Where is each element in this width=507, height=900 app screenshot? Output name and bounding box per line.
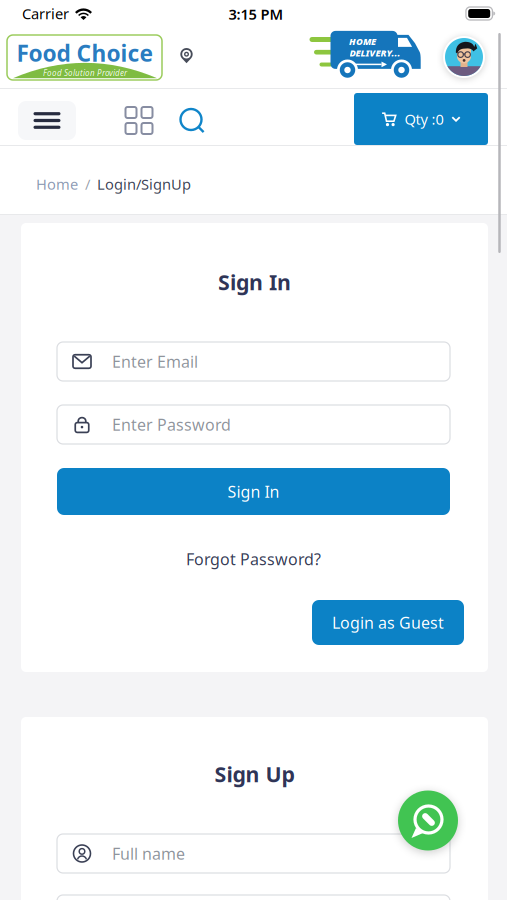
- staticText: Enter Email: [112, 351, 198, 372]
- staticText: Qty :0: [404, 109, 443, 129]
- staticText: Carrier: [22, 4, 69, 23]
- staticText: 3:15 PM: [228, 4, 283, 24]
- button[interactable]: Enter Email: [57, 895, 450, 900]
- button[interactable]: Sign In: [57, 468, 450, 515]
- button[interactable]: Full name: [57, 834, 450, 873]
- button[interactable]: Home: [36, 174, 78, 194]
- button[interactable]: Location: [180, 48, 193, 64]
- staticText: Sign In: [218, 268, 291, 296]
- button[interactable]: WhatsApp chat: [398, 790, 458, 850]
- button[interactable]: Menu: [18, 101, 76, 140]
- staticText: DELIVERY...: [349, 47, 400, 59]
- staticText: Full name: [112, 843, 185, 864]
- staticText: HOME: [349, 35, 376, 48]
- staticText: Food Choice: [16, 38, 153, 68]
- staticText: Login as Guest: [332, 612, 444, 633]
- button[interactable]: Account: [443, 36, 485, 78]
- staticText: Enter Password: [112, 414, 231, 435]
- staticText: Food Solution Provider: [43, 68, 127, 78]
- staticText: Home: [36, 174, 78, 194]
- staticText: Login/SignUp: [97, 174, 191, 194]
- button[interactable]: Login as Guest: [312, 600, 464, 645]
- button[interactable]: Forgot Password?: [186, 548, 321, 570]
- staticText: Sign Up: [214, 760, 294, 788]
- button[interactable]: Cart quantity: [354, 93, 488, 145]
- button[interactable]: Food Choice home: [7, 35, 162, 80]
- staticText: Forgot Password?: [186, 548, 321, 570]
- button[interactable]: Enter Password: [57, 405, 450, 444]
- staticText: /: [85, 174, 90, 194]
- button[interactable]: Categories: [125, 107, 152, 134]
- button[interactable]: Enter Email: [57, 342, 450, 381]
- staticText: Sign In: [227, 481, 279, 502]
- button[interactable]: Search: [180, 108, 204, 132]
